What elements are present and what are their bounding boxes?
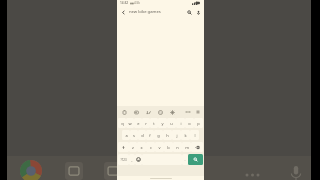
button[interactable]: Back [119,8,127,16]
staticText: y [161,121,164,126]
staticText: n [176,145,179,150]
button[interactable]: Keyboard settings [194,108,201,115]
staticText: b [167,145,170,150]
button[interactable]: i [176,118,185,128]
staticText: l [194,133,196,138]
staticText: a [125,133,128,138]
button[interactable]: Settings [168,108,176,116]
staticText: h [166,133,169,138]
staticText: j [176,133,178,138]
staticText: i [180,121,182,126]
staticText: u [170,121,173,126]
button[interactable]: Search [188,154,203,165]
staticText: c [150,145,152,150]
staticText: x [140,145,143,150]
staticText: , [131,157,133,162]
button[interactable]: Translate [144,108,152,116]
staticText: e [137,121,140,126]
button[interactable]: e [134,118,142,128]
staticText: 14:32 [120,1,129,5]
staticText: o [188,121,191,126]
staticText: k [184,133,187,138]
button[interactable]: , [129,154,135,165]
button[interactable]: q [118,118,126,128]
button[interactable]: Backspace [191,142,203,152]
button[interactable]: d [138,130,146,140]
staticText: d [141,133,144,138]
button[interactable]: c [146,142,155,152]
button[interactable]: h [163,130,172,140]
button[interactable]: b [164,142,173,152]
button[interactable]: r [142,118,150,128]
staticText: new bike games [129,9,161,15]
staticText: s [133,133,135,138]
button[interactable]: Stickers [156,108,164,116]
button[interactable]: GIF [132,108,140,116]
staticText: g [157,133,160,138]
staticText: t [153,121,155,126]
button[interactable]: m [182,142,191,152]
staticText: z [132,145,134,150]
button[interactable]: v [155,142,164,152]
button[interactable]: Clipboard [120,108,128,116]
button[interactable]: z [129,142,137,152]
button[interactable]: ?123 [118,154,129,165]
button[interactable]: f [146,130,154,140]
button[interactable]: j [172,130,181,140]
staticText: 4.5k [134,1,140,5]
staticText: w [128,121,132,126]
button[interactable]: Shift [118,142,129,152]
staticText: f [149,133,151,138]
button[interactable]: Voice search [194,8,202,16]
button[interactable]: u [167,118,176,128]
button[interactable]: o [185,118,194,128]
button[interactable]: g [154,130,163,140]
staticText: m [185,145,189,150]
staticText: p [197,121,200,126]
staticText: r [145,121,147,126]
button[interactable]: k [181,130,190,140]
button[interactable]: p [194,118,203,128]
button[interactable]: t [150,118,158,128]
button[interactable]: s [130,130,138,140]
button[interactable]: l [190,130,199,140]
button[interactable]: y [158,118,167,128]
button[interactable]: x [137,142,146,152]
button[interactable]: Search [185,8,193,16]
button[interactable]: a [122,130,130,140]
staticText: q [121,121,124,126]
button[interactable]: Emoji [135,154,142,165]
button[interactable]: new bike games [129,9,184,15]
staticText: . [184,157,186,162]
button[interactable]: w [126,118,134,128]
staticText: ?123 [120,158,127,162]
button[interactable]: n [173,142,182,152]
staticText: v [158,145,161,150]
